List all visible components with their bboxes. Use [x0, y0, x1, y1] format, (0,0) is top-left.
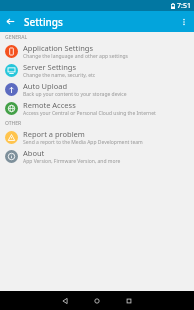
button[interactable]: Server Settings — [0, 61, 194, 80]
staticText: 7:51 — [177, 1, 191, 11]
staticText: Change the language and other app settin… — [23, 53, 129, 60]
staticText: Report a problem — [23, 129, 85, 139]
button[interactable]: About — [0, 147, 194, 166]
staticText: Back up your content to your storage dev… — [23, 91, 127, 98]
staticText: Server Settings — [23, 62, 77, 72]
button[interactable]: Report a problem — [0, 128, 194, 147]
staticText: GENERAL — [5, 34, 28, 41]
staticText: Access your Central or Personal Cloud us… — [23, 110, 156, 117]
button[interactable]: Auto Upload — [0, 80, 194, 99]
button[interactable]: Application Settings — [0, 42, 194, 61]
button[interactable]: Remote Access — [0, 99, 194, 118]
button[interactable]: Back — [49, 291, 81, 310]
staticText: Remote Access — [23, 100, 76, 110]
button[interactable]: More options — [173, 11, 194, 32]
staticText: App Version, Firmware Version, and more — [23, 158, 121, 165]
staticText: About — [23, 148, 45, 158]
button[interactable]: Recents — [113, 291, 145, 310]
button[interactable]: Home — [81, 291, 113, 310]
staticText: Settings — [24, 15, 63, 29]
staticText: Send a report to the Media App Developme… — [23, 139, 143, 146]
staticText: Auto Upload — [23, 81, 68, 91]
button[interactable]: Back — [0, 11, 21, 32]
staticText: Change the name, security, etc — [23, 72, 96, 79]
staticText: Application Settings — [23, 43, 93, 53]
staticText: OTHER — [5, 120, 22, 127]
